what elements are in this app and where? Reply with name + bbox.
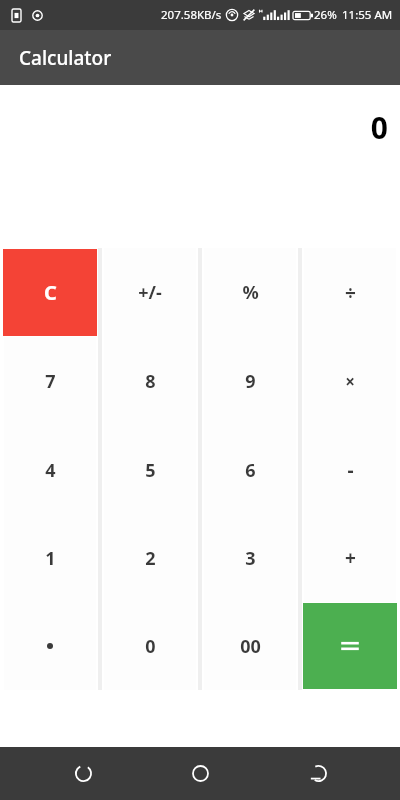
- button[interactable]: 5: [104, 426, 196, 514]
- button[interactable]: Back: [283, 747, 353, 800]
- staticText: ×: [345, 370, 355, 393]
- staticText: ÷: [345, 280, 356, 306]
- staticText: 8: [145, 369, 156, 394]
- button[interactable]: Recent apps: [48, 747, 118, 800]
- staticText: 00: [240, 634, 261, 659]
- staticText: 6: [245, 458, 256, 483]
- button[interactable]: 3: [204, 514, 296, 602]
- staticText: +: [345, 545, 356, 571]
- button[interactable]: [4, 602, 96, 690]
- button[interactable]: 4: [4, 426, 96, 514]
- button[interactable]: 6: [204, 426, 296, 514]
- button[interactable]: 2: [104, 514, 196, 602]
- button[interactable]: ×: [304, 337, 396, 426]
- staticText: +/-: [138, 280, 162, 305]
- staticText: C: [44, 279, 57, 306]
- staticText: 0: [370, 107, 388, 148]
- staticText: -: [347, 457, 354, 483]
- button[interactable]: 1: [4, 514, 96, 602]
- button[interactable]: C: [3, 249, 97, 336]
- button[interactable]: 9: [204, 337, 296, 426]
- button[interactable]: 00: [204, 602, 296, 690]
- staticText: 1: [45, 546, 56, 571]
- staticText: 2: [145, 546, 156, 571]
- button[interactable]: Equals: [303, 603, 397, 689]
- staticText: 26%: [314, 7, 337, 23]
- button[interactable]: ÷: [304, 248, 396, 337]
- staticText: 5: [145, 458, 156, 483]
- button[interactable]: %: [204, 248, 296, 337]
- button[interactable]: +: [304, 514, 396, 602]
- button[interactable]: Home: [165, 747, 235, 800]
- button[interactable]: 0: [104, 602, 196, 690]
- staticText: 11:55 AM: [342, 7, 393, 23]
- staticText: 207.58KB/s: [161, 7, 222, 23]
- button[interactable]: 8: [104, 337, 196, 426]
- button[interactable]: 7: [4, 337, 96, 426]
- button[interactable]: -: [304, 426, 396, 514]
- button[interactable]: +/-: [104, 248, 196, 337]
- staticText: 7: [45, 369, 56, 394]
- staticText: 3: [245, 546, 256, 571]
- staticText: %: [242, 280, 259, 305]
- staticText: 4: [45, 458, 56, 483]
- staticText: 0: [145, 634, 156, 659]
- other: Equals: [339, 639, 361, 653]
- staticText: 9: [245, 369, 256, 394]
- staticText: Calculator: [19, 45, 112, 71]
